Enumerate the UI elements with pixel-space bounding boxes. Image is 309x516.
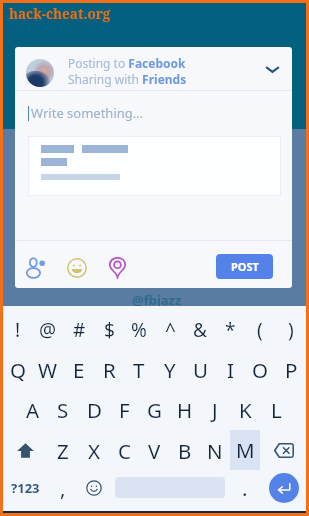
button[interactable]: T bbox=[124, 349, 154, 390]
button[interactable]: A bbox=[18, 389, 48, 430]
button[interactable]: ( bbox=[245, 309, 275, 350]
button[interactable]: $ bbox=[94, 309, 124, 350]
staticText: V bbox=[148, 437, 161, 465]
staticText: # bbox=[73, 317, 86, 343]
button[interactable]: POST bbox=[216, 254, 273, 279]
staticText: A bbox=[26, 396, 40, 424]
button[interactable]: J bbox=[200, 389, 230, 430]
button[interactable]: W bbox=[33, 349, 63, 390]
staticText: POST bbox=[231, 259, 259, 274]
staticText: ^ bbox=[165, 317, 176, 343]
staticText: R bbox=[103, 356, 116, 384]
staticText: & bbox=[193, 317, 207, 343]
button[interactable] bbox=[28, 136, 281, 196]
staticText: M bbox=[236, 436, 255, 464]
button[interactable]: L bbox=[261, 389, 291, 430]
button[interactable]: Feeling or activity bbox=[64, 255, 90, 281]
staticText: F bbox=[119, 396, 130, 424]
button[interactable]: Check in bbox=[104, 255, 130, 281]
staticText: G bbox=[147, 396, 162, 424]
button[interactable]: Posting to Facebook bbox=[15, 47, 292, 90]
button[interactable]: ! bbox=[3, 309, 33, 350]
button[interactable]: X bbox=[79, 430, 109, 471]
button[interactable]: Q bbox=[3, 349, 33, 390]
button[interactable]: & bbox=[185, 309, 215, 350]
button[interactable]: O bbox=[245, 349, 275, 390]
staticText: P bbox=[285, 356, 298, 384]
staticText: T bbox=[133, 356, 145, 384]
button[interactable]: Shift bbox=[3, 430, 48, 471]
staticText: E bbox=[73, 356, 85, 384]
staticText: D bbox=[87, 396, 102, 424]
staticText: I bbox=[227, 356, 234, 384]
button[interactable]: P bbox=[276, 349, 306, 390]
button[interactable]: F bbox=[109, 389, 139, 430]
button[interactable]: I bbox=[215, 349, 245, 390]
button[interactable]: K bbox=[230, 389, 260, 430]
button[interactable]: B bbox=[170, 430, 200, 471]
staticText: ! bbox=[15, 317, 21, 343]
button[interactable]: * bbox=[215, 309, 245, 350]
button[interactable]: Change audience bbox=[258, 55, 286, 83]
button[interactable]: C bbox=[109, 430, 139, 471]
staticText: X bbox=[88, 437, 101, 465]
button[interactable]: Y bbox=[155, 349, 185, 390]
staticText: L bbox=[271, 396, 282, 424]
button[interactable]: Tag people bbox=[22, 255, 48, 281]
staticText: hack-cheat.org bbox=[9, 5, 111, 23]
button[interactable]: S bbox=[48, 389, 78, 430]
staticText: % bbox=[131, 317, 147, 343]
staticText: $ bbox=[104, 317, 115, 343]
button[interactable]: ) bbox=[276, 309, 306, 350]
button[interactable]: H bbox=[170, 389, 200, 430]
staticText: O bbox=[252, 356, 269, 384]
staticText: U bbox=[193, 356, 208, 384]
button[interactable]: Emoji bbox=[79, 467, 109, 508]
staticText: Z bbox=[57, 437, 69, 465]
staticText: * bbox=[225, 317, 236, 343]
staticText: C bbox=[118, 437, 131, 465]
button[interactable]: Z bbox=[48, 430, 78, 471]
button[interactable]: ^ bbox=[155, 309, 185, 350]
button[interactable]: R bbox=[94, 349, 124, 390]
staticText: Sharing with Friends bbox=[68, 71, 187, 87]
staticText: ( bbox=[257, 317, 263, 343]
button[interactable]: U bbox=[185, 349, 215, 390]
button[interactable]: Backspace bbox=[261, 430, 306, 471]
button[interactable]: ?123 bbox=[3, 467, 48, 508]
staticText: K bbox=[239, 396, 252, 424]
staticText: ) bbox=[288, 317, 294, 343]
staticText: Y bbox=[164, 356, 176, 384]
staticText: W bbox=[38, 356, 58, 384]
button[interactable]: @ bbox=[33, 309, 63, 350]
button[interactable]: . bbox=[230, 467, 260, 508]
staticText: Write something… bbox=[31, 104, 144, 122]
button[interactable]: Enter bbox=[261, 467, 306, 508]
staticText: J bbox=[212, 396, 218, 424]
staticText: Q bbox=[10, 356, 27, 384]
staticText: , bbox=[60, 474, 66, 502]
staticText: B bbox=[178, 437, 192, 465]
button[interactable]: V bbox=[139, 430, 169, 471]
button[interactable]: M bbox=[230, 430, 260, 470]
button[interactable]: # bbox=[64, 309, 94, 350]
button[interactable]: N bbox=[200, 430, 230, 471]
staticText: Posting to Facebook bbox=[68, 55, 186, 71]
button[interactable]: D bbox=[79, 389, 109, 430]
staticText: H bbox=[177, 396, 193, 424]
staticText: @ bbox=[39, 317, 57, 343]
staticText: @fbjazz bbox=[132, 291, 182, 309]
staticText: ?123 bbox=[11, 479, 40, 497]
button[interactable]: E bbox=[64, 349, 94, 390]
button[interactable]: Space bbox=[109, 467, 230, 508]
button[interactable]: G bbox=[139, 389, 169, 430]
staticText: S bbox=[57, 396, 69, 424]
button[interactable]: , bbox=[48, 467, 78, 508]
staticText: N bbox=[207, 437, 223, 465]
button[interactable]: % bbox=[124, 309, 154, 350]
staticText: . bbox=[242, 474, 248, 502]
